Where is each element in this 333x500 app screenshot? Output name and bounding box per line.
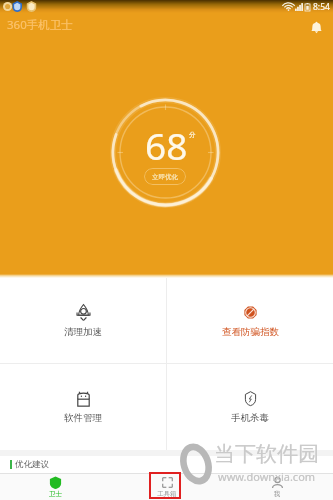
staticText: 我: [274, 490, 281, 498]
staticText: 68: [145, 120, 188, 170]
button[interactable]: 手机杀毒: [167, 364, 333, 450]
staticText: 分: [189, 131, 196, 139]
staticText: 手机杀毒: [231, 412, 269, 424]
staticText: 当下软件园: [214, 441, 319, 467]
staticText: 8:54: [313, 1, 330, 13]
staticText: 卫士: [49, 490, 62, 498]
staticText: 立即优化: [152, 173, 178, 181]
button[interactable]: 我: [222, 474, 333, 500]
button[interactable]: 立即优化: [144, 168, 186, 185]
button[interactable]: 软件管理: [0, 364, 166, 450]
staticText: 清理加速: [64, 326, 102, 338]
button[interactable]: Notifications: [305, 16, 327, 38]
button[interactable]: 清理加速: [0, 278, 166, 363]
staticText: 优化建议: [15, 459, 49, 470]
button[interactable]: 卫士: [0, 474, 111, 500]
staticText: www.downxia.com: [218, 469, 316, 484]
button[interactable]: 工具箱: [111, 474, 222, 500]
staticText: 360手机卫士: [7, 17, 73, 33]
staticText: 软件管理: [64, 412, 102, 424]
button[interactable]: 查看防骗指数: [167, 278, 333, 363]
staticText: 工具箱: [157, 490, 177, 498]
staticText: 查看防骗指数: [222, 326, 279, 338]
